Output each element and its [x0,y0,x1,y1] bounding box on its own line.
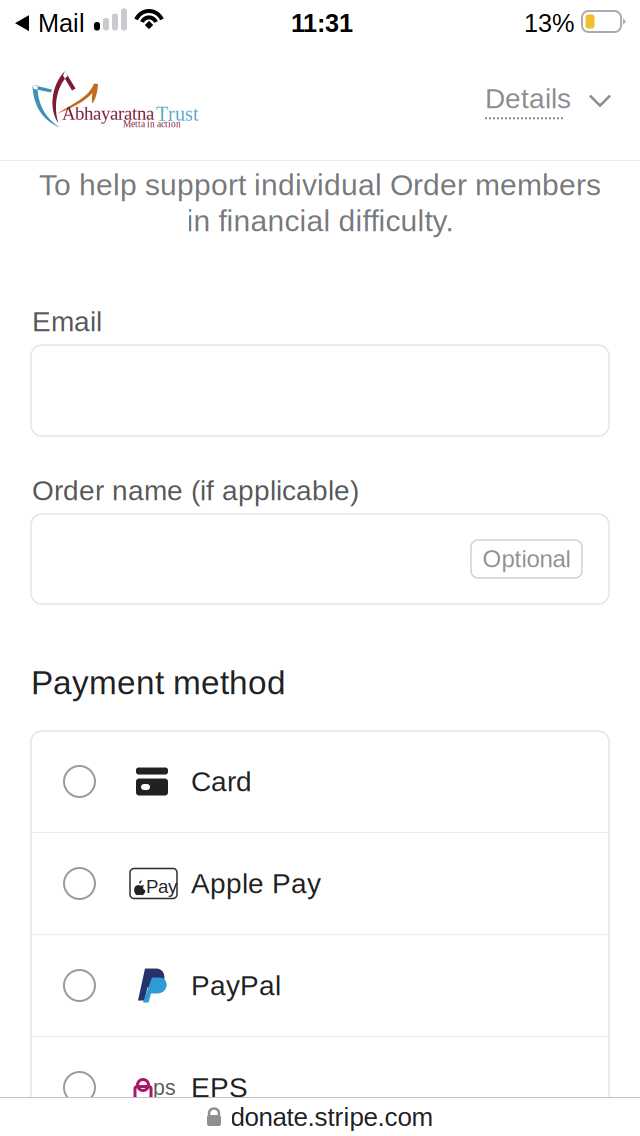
staticText: Optional [482,546,570,572]
staticText: EPS [191,1072,248,1103]
staticText: Metta in action [123,119,181,129]
button[interactable]: PayPal [31,935,609,1036]
staticText: donate.stripe.com [230,1102,433,1131]
staticText: Trust [156,103,199,125]
button[interactable]: Card [31,731,609,832]
staticText: Mail [38,9,85,37]
button[interactable]: Pay [31,833,609,934]
button[interactable]: Details [477,73,619,129]
staticText: in financial difficulty. [186,204,453,237]
staticText: 13% [524,9,575,37]
staticText: Abhayaratna [62,103,154,124]
staticText: Payment method [31,664,286,701]
staticText: Apple Pay [191,868,321,899]
staticText: Email [32,306,102,337]
button[interactable]: Back to Mail [11,3,89,43]
staticText: Details [485,83,571,114]
staticText: Order name (if applicable) [32,475,359,506]
staticText: 11:31 [291,9,353,37]
staticText: ps [153,1076,176,1099]
staticText: Card [191,766,252,797]
button[interactable]: ps [31,1037,609,1136]
staticText: PayPal [191,970,281,1001]
staticText: To help support individual Order members [39,168,601,201]
staticText: Pay [146,876,177,897]
